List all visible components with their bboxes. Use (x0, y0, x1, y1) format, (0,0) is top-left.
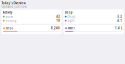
staticText: Activity (3, 11, 12, 14)
staticText: 18 (56, 19, 60, 22)
staticText: Deep (67, 15, 75, 18)
staticText: Steps (6, 26, 13, 30)
button[interactable]: Steps (1, 25, 62, 34)
staticText: Light (67, 19, 74, 22)
staticText: 3.2 (117, 15, 122, 18)
button[interactable]: Sleep (63, 9, 124, 24)
staticText: 42 (56, 15, 60, 18)
staticText: 4.1 (117, 19, 122, 22)
staticText: Updated just now (1, 5, 26, 8)
staticText: 8,240 (51, 26, 60, 30)
staticText: Today's Overview (1, 1, 25, 5)
button[interactable]: Activity (1, 9, 62, 24)
staticText: Water (68, 26, 75, 30)
staticText: Active (5, 15, 13, 18)
staticText: Sleep (65, 11, 73, 14)
staticText: Resting (5, 19, 16, 22)
staticText: 1.4 L (115, 26, 122, 30)
button[interactable]: Water (63, 25, 124, 34)
